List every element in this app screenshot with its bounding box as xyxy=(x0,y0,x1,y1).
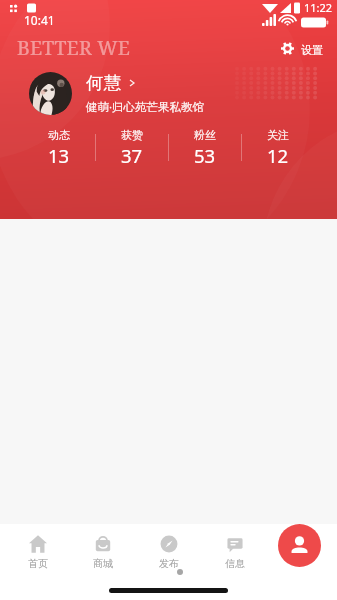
staticText: 动态 xyxy=(48,128,70,142)
button[interactable]: 首页 xyxy=(5,535,70,570)
staticText: 健萌·归心苑芒果私教馆 xyxy=(86,99,205,115)
staticText: 设置 xyxy=(301,43,323,57)
staticText: 12 xyxy=(267,143,289,168)
button[interactable]: 获赞 xyxy=(96,128,168,167)
staticText: 13 xyxy=(48,143,70,168)
button[interactable]: 发布 xyxy=(136,535,202,570)
staticText: BETTER WE xyxy=(17,34,131,61)
button[interactable]: 商城 xyxy=(70,535,136,570)
staticText: 粉丝 xyxy=(194,128,216,142)
staticText: 53 xyxy=(194,143,216,168)
button[interactable]: 设置 xyxy=(277,39,327,57)
button[interactable]: 关注 xyxy=(242,128,314,167)
staticText: 获赞 xyxy=(121,128,143,142)
staticText: 37 xyxy=(121,143,143,168)
staticText: 首页 xyxy=(28,557,48,570)
button[interactable]: 动态 xyxy=(23,128,95,167)
button[interactable]: Avatar xyxy=(29,72,72,115)
button[interactable]: 粉丝 xyxy=(169,128,241,167)
staticText: 10:41 xyxy=(24,12,55,28)
button[interactable]: Profile xyxy=(278,524,321,567)
button[interactable]: 信息 xyxy=(202,535,268,570)
staticText: 11:22 xyxy=(304,0,333,15)
staticText: 关注 xyxy=(267,128,289,142)
staticText: 信息 xyxy=(225,557,245,570)
staticText: 何慧 xyxy=(86,72,121,94)
staticText: 发布 xyxy=(159,557,179,570)
staticText: 商城 xyxy=(93,557,113,570)
